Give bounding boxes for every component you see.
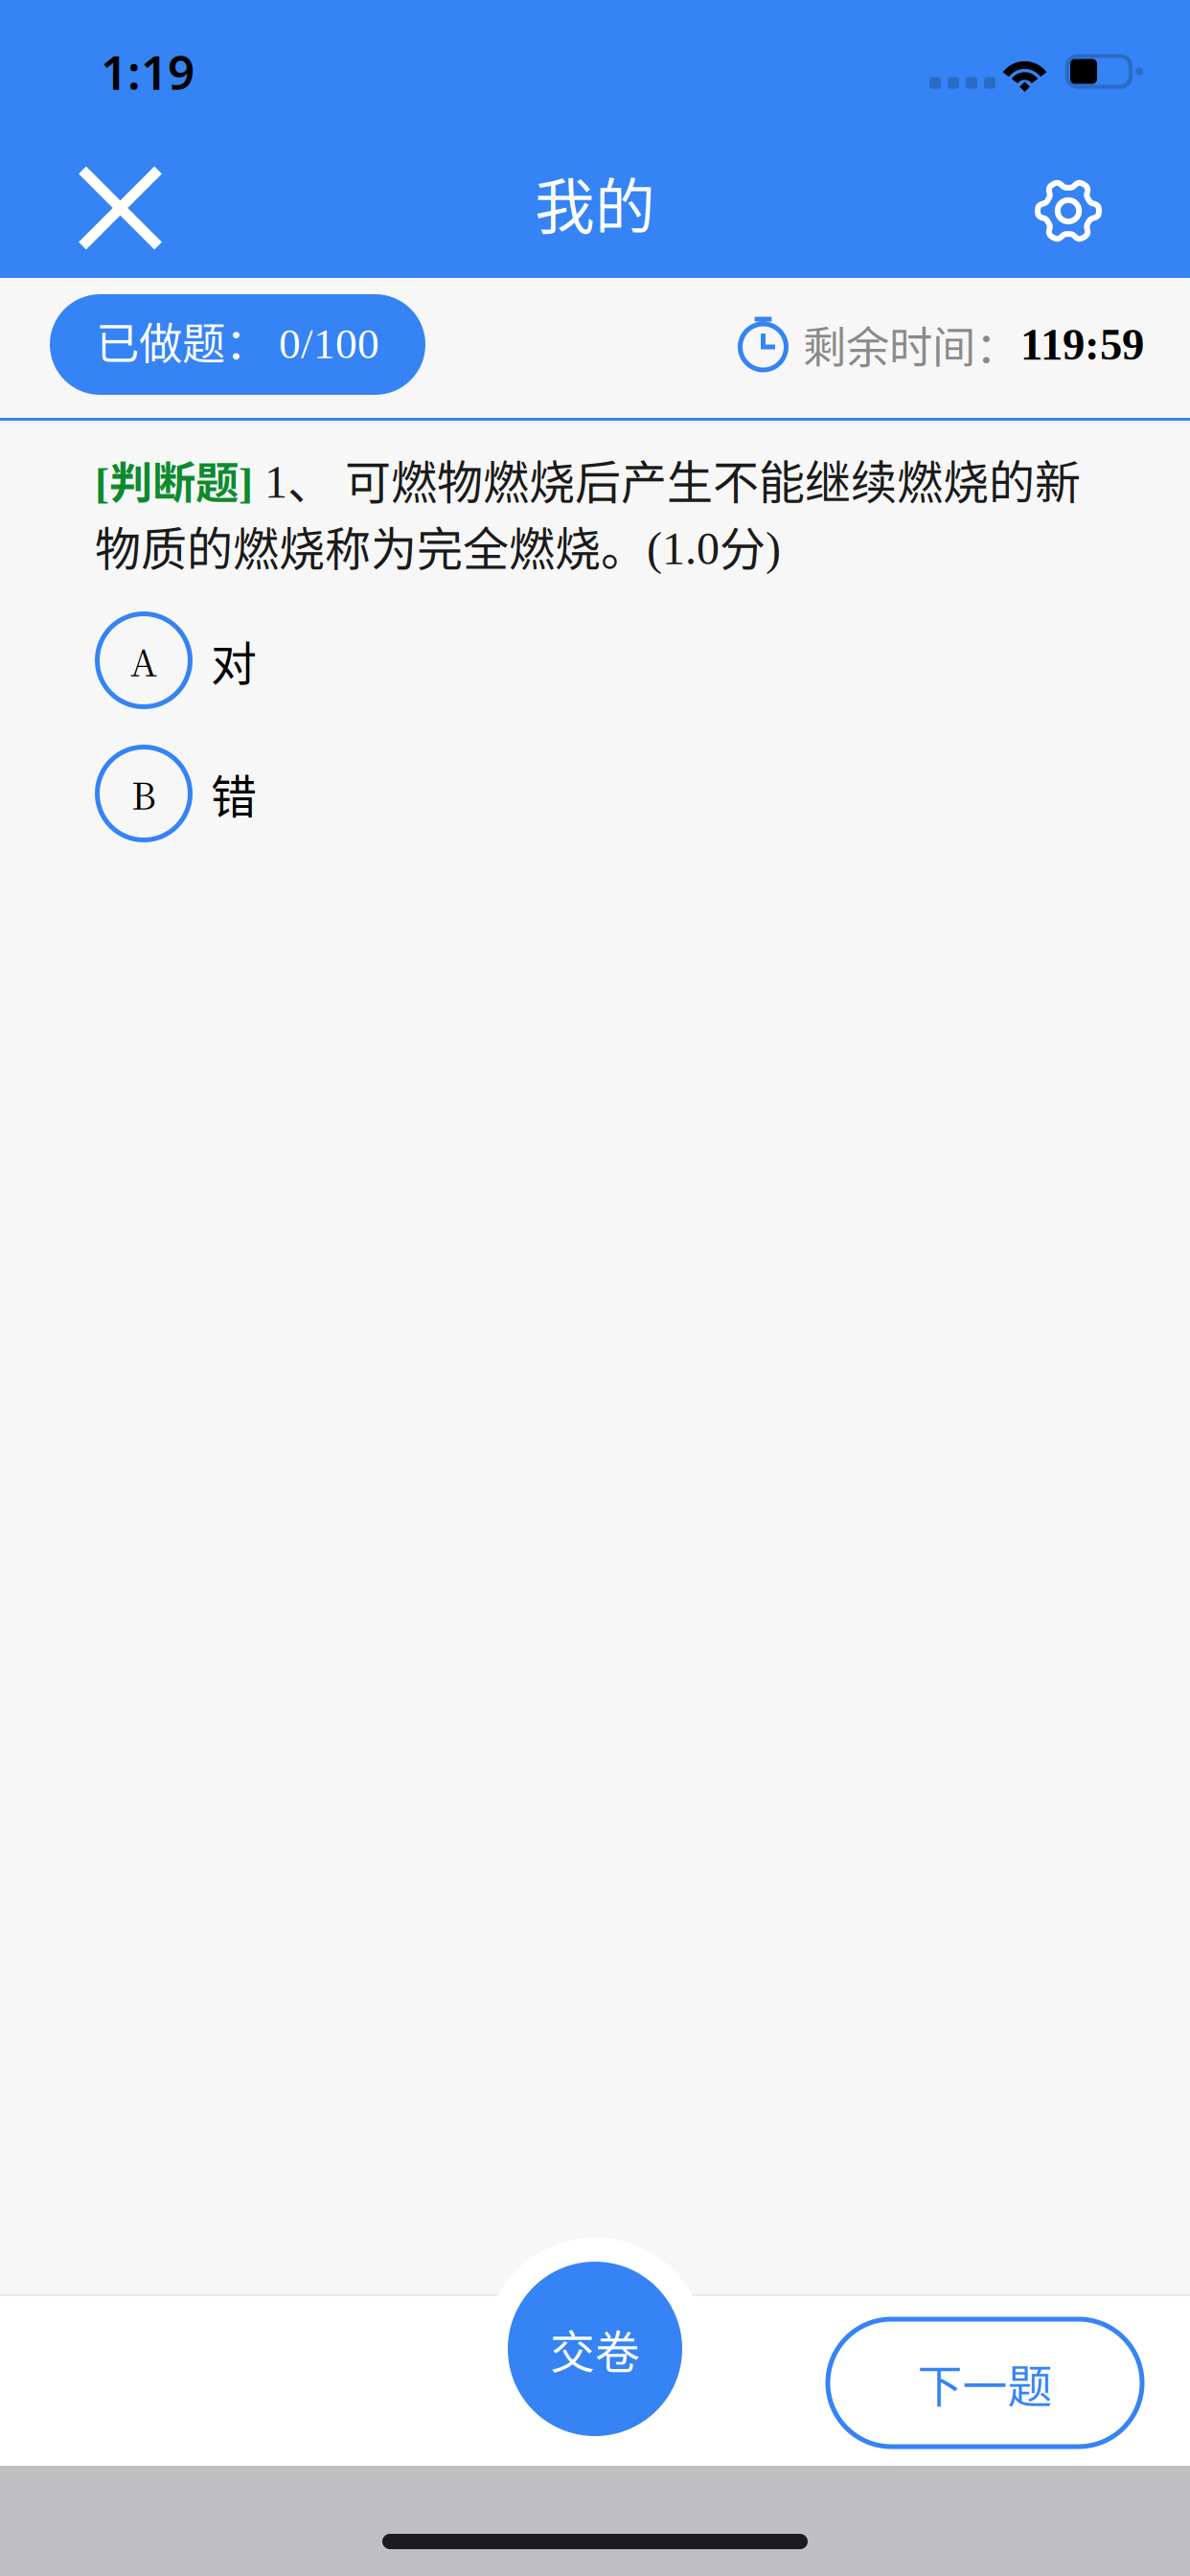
- staticText: 剩余时间：: [803, 314, 1018, 375]
- button[interactable]: 已做题： 0/100: [50, 294, 425, 395]
- staticText: 错: [211, 760, 257, 827]
- staticText: 已做题： 0/100: [96, 310, 379, 371]
- button[interactable]: 交卷: [508, 2262, 682, 2436]
- staticText: 对: [211, 627, 257, 694]
- staticText: 119:59: [1020, 320, 1144, 369]
- button[interactable]: 下一题: [828, 2319, 1142, 2447]
- staticText: 下一题: [917, 2351, 1053, 2415]
- button[interactable]: Settings: [989, 144, 1190, 278]
- staticText: 交卷: [550, 2316, 640, 2381]
- staticText: 1:19: [101, 39, 195, 104]
- button[interactable]: B: [0, 745, 1190, 842]
- staticText: 我的: [535, 159, 655, 246]
- button[interactable]: A: [0, 611, 1190, 709]
- staticText: B: [131, 767, 156, 820]
- button[interactable]: Close: [0, 144, 206, 278]
- staticText: [判断题] 1、 可燃物燃烧后产生不能继续燃烧的新物质的燃烧称为完全燃烧。(1.…: [95, 446, 1081, 579]
- button[interactable]: 剩余时间：: [738, 294, 1144, 395]
- staticText: A: [130, 634, 157, 687]
